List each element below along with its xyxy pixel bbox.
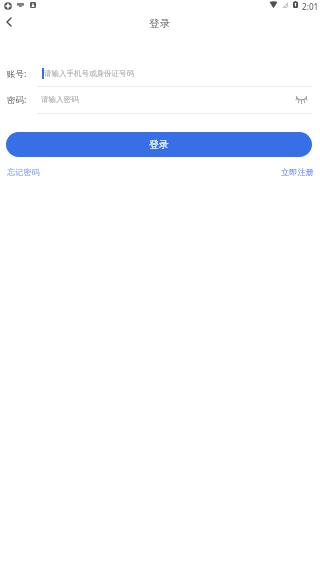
staticText: 请输入手机号或身份证号码	[44, 69, 134, 78]
button[interactable]: 密码:请输入密码	[6, 91, 312, 112]
button[interactable]: 忘记密码	[7, 167, 40, 177]
button[interactable]: 立即注册	[281, 167, 314, 177]
staticText: 2:01	[302, 1, 319, 12]
staticText: 账号:	[7, 68, 27, 80]
button[interactable]: Show password	[292, 91, 310, 109]
staticText: 密码:	[7, 94, 27, 106]
button[interactable]: Back	[0, 13, 18, 31]
staticText: 请输入密码	[41, 95, 79, 104]
button[interactable]: 账号:请输入手机号或身份证号码	[6, 64, 312, 85]
staticText: 登录	[149, 138, 169, 151]
button[interactable]: 登录	[6, 132, 312, 157]
staticText: 立即注册	[281, 167, 314, 177]
staticText: 登录	[149, 17, 171, 30]
staticText: 忘记密码	[7, 167, 40, 177]
